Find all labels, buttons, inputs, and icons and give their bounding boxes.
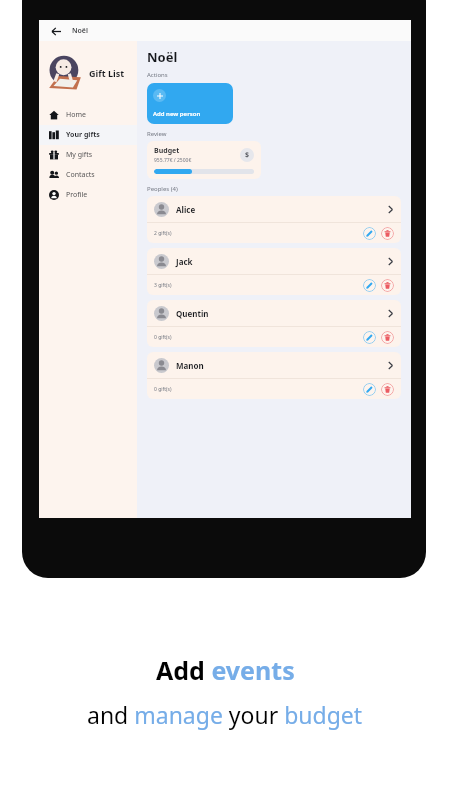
button[interactable]: Your gifts [39,125,137,145]
button[interactable]: Jack [147,248,401,295]
staticText: Jack [176,256,387,267]
button[interactable]: Edit [363,331,376,344]
button[interactable]: Delete [381,227,394,240]
button[interactable]: Edit [363,279,376,292]
staticText: Alice [176,204,387,215]
button[interactable]: Delete [381,279,394,292]
staticText: Manon [176,360,387,371]
button[interactable]: Contacts [39,165,137,185]
staticText: Add events [156,653,295,687]
staticText: $ [245,150,250,160]
staticText: Peoples (4) [147,185,178,193]
button[interactable]: Alice [147,196,401,243]
button[interactable]: Back [49,24,63,38]
button[interactable]: Budget [147,141,261,179]
button[interactable]: Quentin [147,300,401,347]
staticText: Your gifts [66,130,100,140]
button[interactable]: Delete [381,331,394,344]
button[interactable]: Profile [39,185,137,205]
button[interactable]: Manon [147,352,401,399]
staticText: Quentin [176,308,387,319]
button[interactable]: Delete [381,383,394,396]
button[interactable]: Home [39,105,137,125]
staticText: Contacts [66,170,95,180]
staticText: Home [66,110,86,120]
staticText: 2 gift(s) [154,230,363,237]
staticText: Review [147,130,167,138]
staticText: Profile [66,190,88,200]
button[interactable]: Add new person [147,83,233,124]
staticText: Actions [147,71,168,79]
button[interactable]: Edit [363,383,376,396]
staticText: My gifts [66,150,93,160]
staticText: 955.77€ / 2500€ [154,157,192,164]
staticText: Add new person [153,110,201,118]
button[interactable]: Gift List [47,53,137,93]
staticText: and manage your budget [87,699,363,730]
button[interactable]: Edit [363,227,376,240]
staticText: 3 gift(s) [154,282,363,289]
staticText: Budget [154,146,180,156]
staticText: Noël [147,48,178,66]
staticText: 0 gift(s) [154,386,363,393]
staticText: Noël [72,26,88,36]
staticText: Gift List [89,67,125,79]
staticText: 0 gift(s) [154,334,363,341]
button[interactable]: My gifts [39,145,137,165]
